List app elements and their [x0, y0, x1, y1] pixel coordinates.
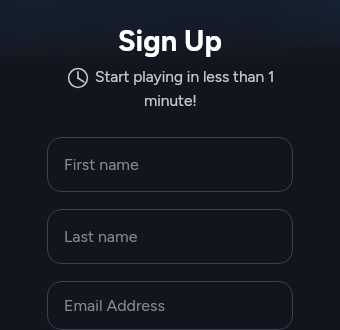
staticText: First name: [64, 155, 139, 174]
other: Quick signup timing: [68, 68, 88, 88]
staticText: Start playing in less than 1: [95, 67, 275, 86]
staticText: Email Address: [64, 296, 165, 315]
staticText: Last name: [64, 227, 138, 246]
button[interactable]: First name: [47, 137, 293, 192]
staticText: Sign Up: [118, 23, 222, 58]
staticText: minute!: [144, 91, 197, 110]
button[interactable]: Last name: [47, 209, 293, 264]
button[interactable]: Email Address: [47, 281, 293, 330]
